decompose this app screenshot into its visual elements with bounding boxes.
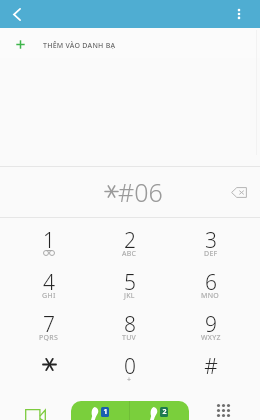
staticText: 2 (124, 226, 136, 255)
button[interactable] (9, 344, 89, 386)
staticText: 3 (205, 226, 217, 255)
button[interactable]: 3 (170, 218, 251, 260)
button[interactable]: # (170, 344, 251, 386)
staticText: #06 (118, 175, 163, 209)
staticText: MNO (201, 291, 220, 301)
button[interactable]: 2 (89, 218, 170, 260)
staticText: # (204, 352, 218, 381)
button[interactable]: 0 (89, 344, 170, 386)
button[interactable]: THÊM VÀO DANH BẠ (0, 28, 260, 58)
button[interactable]: Video call (25, 409, 46, 420)
staticText: WXYZ (201, 333, 221, 343)
button[interactable]: 9 (170, 302, 251, 344)
staticText: GHI (42, 291, 56, 301)
staticText: 8 (124, 310, 136, 339)
staticText: + (127, 375, 132, 385)
staticText: 1 (103, 407, 108, 417)
button[interactable]: Hide keypad (211, 398, 235, 420)
button[interactable]: 6 (170, 260, 251, 302)
staticText: 0 (124, 352, 136, 381)
button[interactable]: Backspace (226, 179, 252, 205)
staticText: PQRS (39, 333, 59, 343)
staticText: THÊM VÀO DANH BẠ (43, 41, 116, 51)
button[interactable]: 7 (9, 302, 89, 344)
staticText: JKL (124, 291, 135, 301)
staticText: 1 (43, 226, 55, 255)
staticText: 6 (205, 268, 217, 297)
staticText: DEF (204, 249, 218, 259)
button[interactable]: Call with SIM 2 (130, 401, 189, 420)
staticText: ABC (122, 249, 137, 259)
button[interactable]: 1 (9, 218, 89, 260)
staticText: 5 (124, 268, 136, 297)
staticText: TUV (122, 333, 137, 343)
button[interactable]: Call with SIM 1 (71, 401, 129, 420)
staticText: 2 (162, 407, 167, 417)
staticText: 9 (205, 310, 217, 339)
button[interactable]: 5 (89, 260, 170, 302)
staticText: 4 (43, 268, 55, 297)
button[interactable]: More options (227, 2, 251, 26)
button[interactable]: 8 (89, 302, 170, 344)
button[interactable]: 4 (9, 260, 89, 302)
staticText: 7 (43, 310, 55, 339)
button[interactable]: Back (5, 2, 29, 26)
